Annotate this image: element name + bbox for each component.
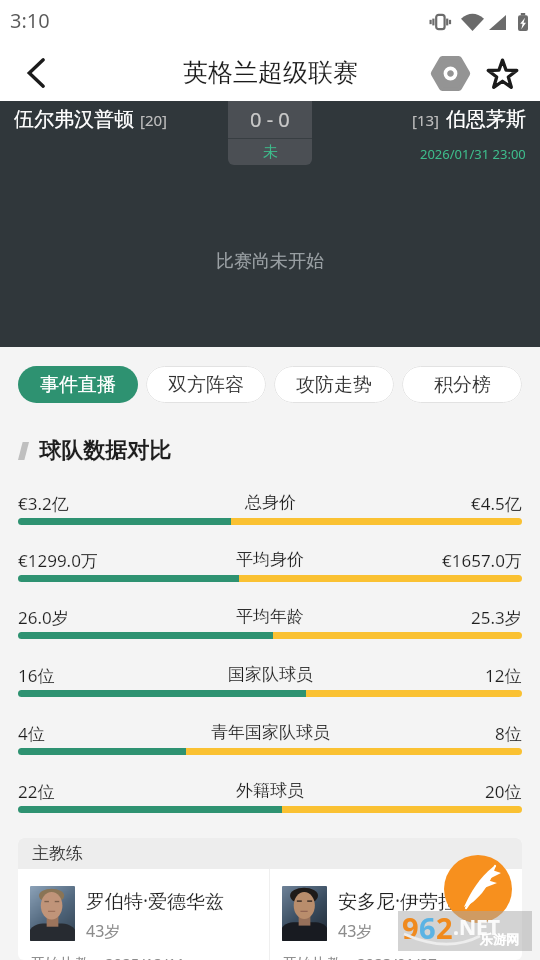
- button[interactable]: 积分榜: [402, 366, 522, 403]
- staticText: [20]: [140, 110, 168, 130]
- staticText: 6: [419, 908, 436, 947]
- staticText: 9: [402, 908, 419, 947]
- staticText: 比赛尚未开始: [216, 250, 324, 273]
- button[interactable]: 攻防走势: [274, 366, 394, 403]
- staticText: 12位: [485, 664, 522, 687]
- staticText: 伯恩茅斯: [446, 107, 526, 132]
- staticText: 青年国家队球员: [211, 722, 330, 743]
- staticText: 25.3岁: [471, 606, 522, 629]
- staticText: 3:10: [10, 7, 50, 34]
- staticText: 主教练: [32, 843, 83, 864]
- staticText: 0 - 0: [250, 106, 290, 133]
- staticText: 外籍球员: [236, 780, 304, 801]
- staticText: 2: [436, 908, 453, 947]
- staticText: 26.0岁: [18, 606, 69, 629]
- staticText: 22位: [18, 780, 55, 803]
- staticText: 乐游网: [480, 931, 519, 947]
- staticText: €4.5亿: [471, 492, 522, 515]
- staticText: 事件直播: [40, 373, 116, 397]
- staticText: 双方阵容: [168, 373, 244, 397]
- staticText: 20位: [485, 780, 522, 803]
- staticText: 伍尔弗汉普顿: [14, 107, 134, 132]
- staticText: 平均年龄: [236, 606, 304, 627]
- staticText: €1299.0万: [18, 549, 98, 572]
- button[interactable]: 事件直播: [18, 366, 138, 403]
- staticText: 4位: [18, 722, 45, 745]
- staticText: €3.2亿: [18, 492, 69, 515]
- staticText: 开始执教：2023/01/27: [282, 953, 437, 960]
- staticText: 43岁: [86, 920, 121, 942]
- staticText: 积分榜: [434, 373, 491, 397]
- staticText: 罗伯特·爱德华兹: [86, 888, 225, 914]
- staticText: €1657.0万: [442, 549, 522, 572]
- staticText: 球队数据对比: [39, 437, 171, 465]
- staticText: 未: [263, 143, 278, 162]
- button[interactable]: Back: [8, 45, 64, 101]
- staticText: 国家队球员: [228, 664, 313, 685]
- staticText: 43岁: [338, 920, 373, 942]
- staticText: 8位: [495, 722, 522, 745]
- staticText: [13]: [412, 110, 440, 130]
- staticText: 安多尼·伊劳拉: [338, 888, 458, 914]
- button[interactable]: Live stream: [424, 47, 476, 99]
- staticText: 平均身价: [236, 549, 304, 570]
- staticText: 开始执教：2025/12/11: [30, 953, 185, 960]
- staticText: .NET: [453, 913, 500, 942]
- staticText: 16位: [18, 664, 55, 687]
- staticText: 攻防走势: [296, 373, 372, 397]
- staticText: 英格兰超级联赛: [183, 57, 358, 88]
- button[interactable]: Favorite: [476, 47, 528, 99]
- staticText: 总身价: [245, 492, 296, 513]
- staticText: 2026/01/31 23:00: [420, 145, 526, 163]
- button[interactable]: 双方阵容: [146, 366, 266, 403]
